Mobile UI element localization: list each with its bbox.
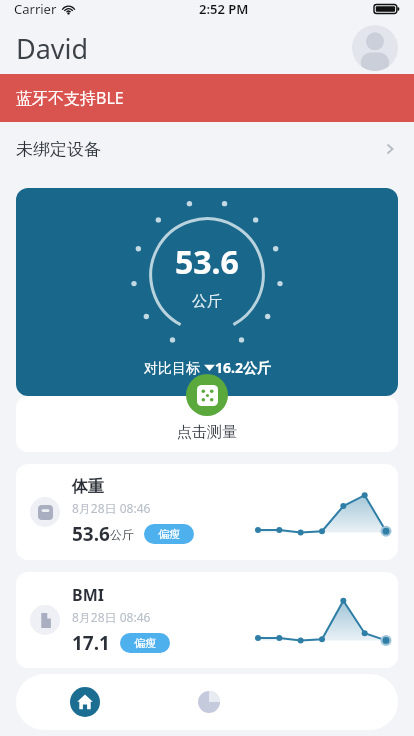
staticText: 16.2公斤 [215, 358, 271, 377]
staticText: 偏瘦 [134, 636, 156, 650]
staticText: 体重 [72, 477, 104, 497]
button[interactable]: 未绑定设备 [0, 122, 414, 176]
staticText: 公斤 [110, 527, 134, 542]
staticText: 53.6 [72, 521, 110, 547]
button[interactable]: BMI [16, 572, 398, 668]
button[interactable]: 体重 [16, 464, 398, 560]
button[interactable]: 蓝牙不支持BLE [0, 74, 414, 122]
staticText: 对比目标 [144, 358, 204, 377]
button[interactable]: Home [16, 674, 154, 730]
button[interactable]: 开始测量 [186, 374, 228, 416]
staticText: 17.1 [72, 630, 110, 656]
staticText: Carrier [14, 0, 57, 18]
button[interactable]: 点击测量 [16, 396, 398, 452]
button[interactable]: Profile [352, 25, 398, 71]
staticText: 蓝牙不支持BLE [16, 87, 124, 109]
button[interactable]: 53.6 [16, 188, 398, 396]
staticText: BMI [72, 584, 104, 606]
staticText: 点击测量 [177, 423, 237, 442]
staticText: 8月28日 08:46 [72, 609, 151, 625]
button[interactable]: Statistics [154, 674, 264, 730]
staticText: 8月28日 08:46 [72, 500, 151, 516]
staticText: David [16, 30, 89, 67]
staticText: 偏瘦 [158, 527, 180, 541]
staticText: 公斤 [192, 292, 222, 311]
staticText: 53.6 [175, 240, 239, 284]
staticText: 未绑定设备 [16, 139, 101, 160]
staticText: 2:52 PM [199, 0, 249, 18]
